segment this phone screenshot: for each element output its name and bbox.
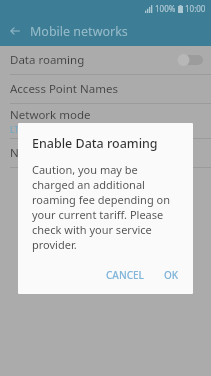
staticText: Mobile networks — [30, 23, 128, 40]
button[interactable]: Navigate up — [0, 16, 30, 46]
button[interactable]: OK — [156, 262, 187, 288]
staticText: 10:00 — [185, 3, 206, 14]
staticText: Network operators — [10, 145, 113, 161]
button[interactable]: Data roaming — [0, 46, 211, 74]
button[interactable]: Network operators — [0, 139, 211, 167]
button[interactable]: CANCEL — [98, 262, 152, 288]
button[interactable]: Network mode — [0, 104, 211, 138]
staticText: LTE/WCDMA/GSM (auto connect) — [10, 124, 141, 136]
staticText: Enable Data roaming — [32, 135, 158, 152]
button[interactable]: Access Point Names — [0, 75, 211, 103]
staticText: OK — [164, 268, 179, 282]
staticText: Data roaming — [10, 52, 85, 68]
staticText: CANCEL — [106, 268, 144, 282]
staticText: 100% — [155, 3, 176, 14]
staticText: Access Point Names — [10, 81, 118, 97]
staticText: Caution, you may be charged an additiona… — [32, 162, 179, 252]
staticText: Network mode — [10, 107, 91, 123]
